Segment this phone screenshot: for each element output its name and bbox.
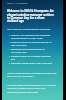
staticText: Perfect groups of window layouts to use … (11, 40, 55, 47)
staticText: • (9, 40, 11, 43)
staticText: • (9, 61, 11, 64)
staticText: To make sure your experience is as good … (7, 83, 57, 94)
staticText: Welcome to GNU & Stumpwm: An elegant win… (7, 9, 55, 22)
staticText: dev.to — javascript (7, 2, 28, 5)
staticText: • (9, 33, 11, 36)
staticText: Extensible and configurable in Common Li… (11, 47, 55, 54)
staticText: Frames and windows are managed independe… (11, 33, 55, 40)
staticText: Dynamic tiling for floating windows too (11, 54, 55, 61)
staticText: Using a tiling window manager changed th… (7, 71, 57, 78)
staticText: Not really for a tiling window manager (7, 27, 55, 30)
staticText: Fantastic keybindings and mode line (11, 61, 52, 64)
staticText: • (9, 54, 11, 57)
staticText: • (9, 47, 11, 50)
